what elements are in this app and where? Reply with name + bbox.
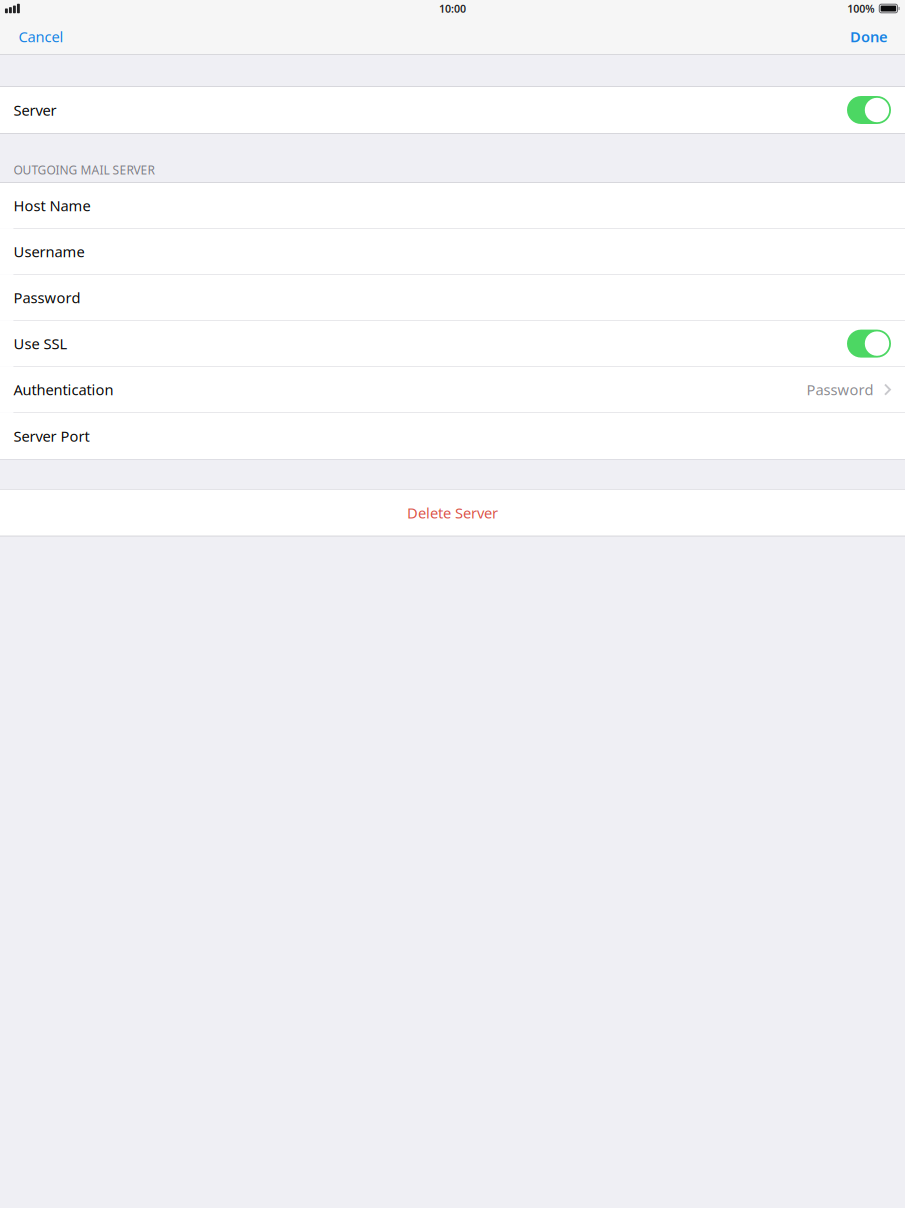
button[interactable]: Server Port [0,413,905,459]
button[interactable]: Use SSL [0,321,905,366]
staticText: Server Port [13,426,89,446]
staticText: Delete Server [407,503,498,522]
button[interactable]: Authentication [0,367,905,412]
staticText: 100% [847,1,874,16]
staticText: 10:00 [439,1,466,16]
button[interactable]: Password [0,275,905,320]
button[interactable]: Server [0,87,905,133]
staticText: Authentication [13,380,113,399]
staticText: Cancel [19,27,64,46]
staticText: Server [13,100,56,120]
staticText: Password [806,380,873,399]
staticText: Done [850,27,888,46]
button[interactable]: Host Name [0,183,905,228]
staticText: Host Name [13,196,90,215]
staticText: OUTGOING MAIL SERVER [13,162,154,178]
staticText: Use SSL [13,334,67,353]
button[interactable]: Delete Server [0,490,905,536]
button[interactable]: Username [0,229,905,274]
button[interactable]: Cancel [0,19,78,53]
staticText: Password [13,288,80,307]
staticText: Username [13,242,84,261]
button[interactable]: Done [836,19,905,53]
